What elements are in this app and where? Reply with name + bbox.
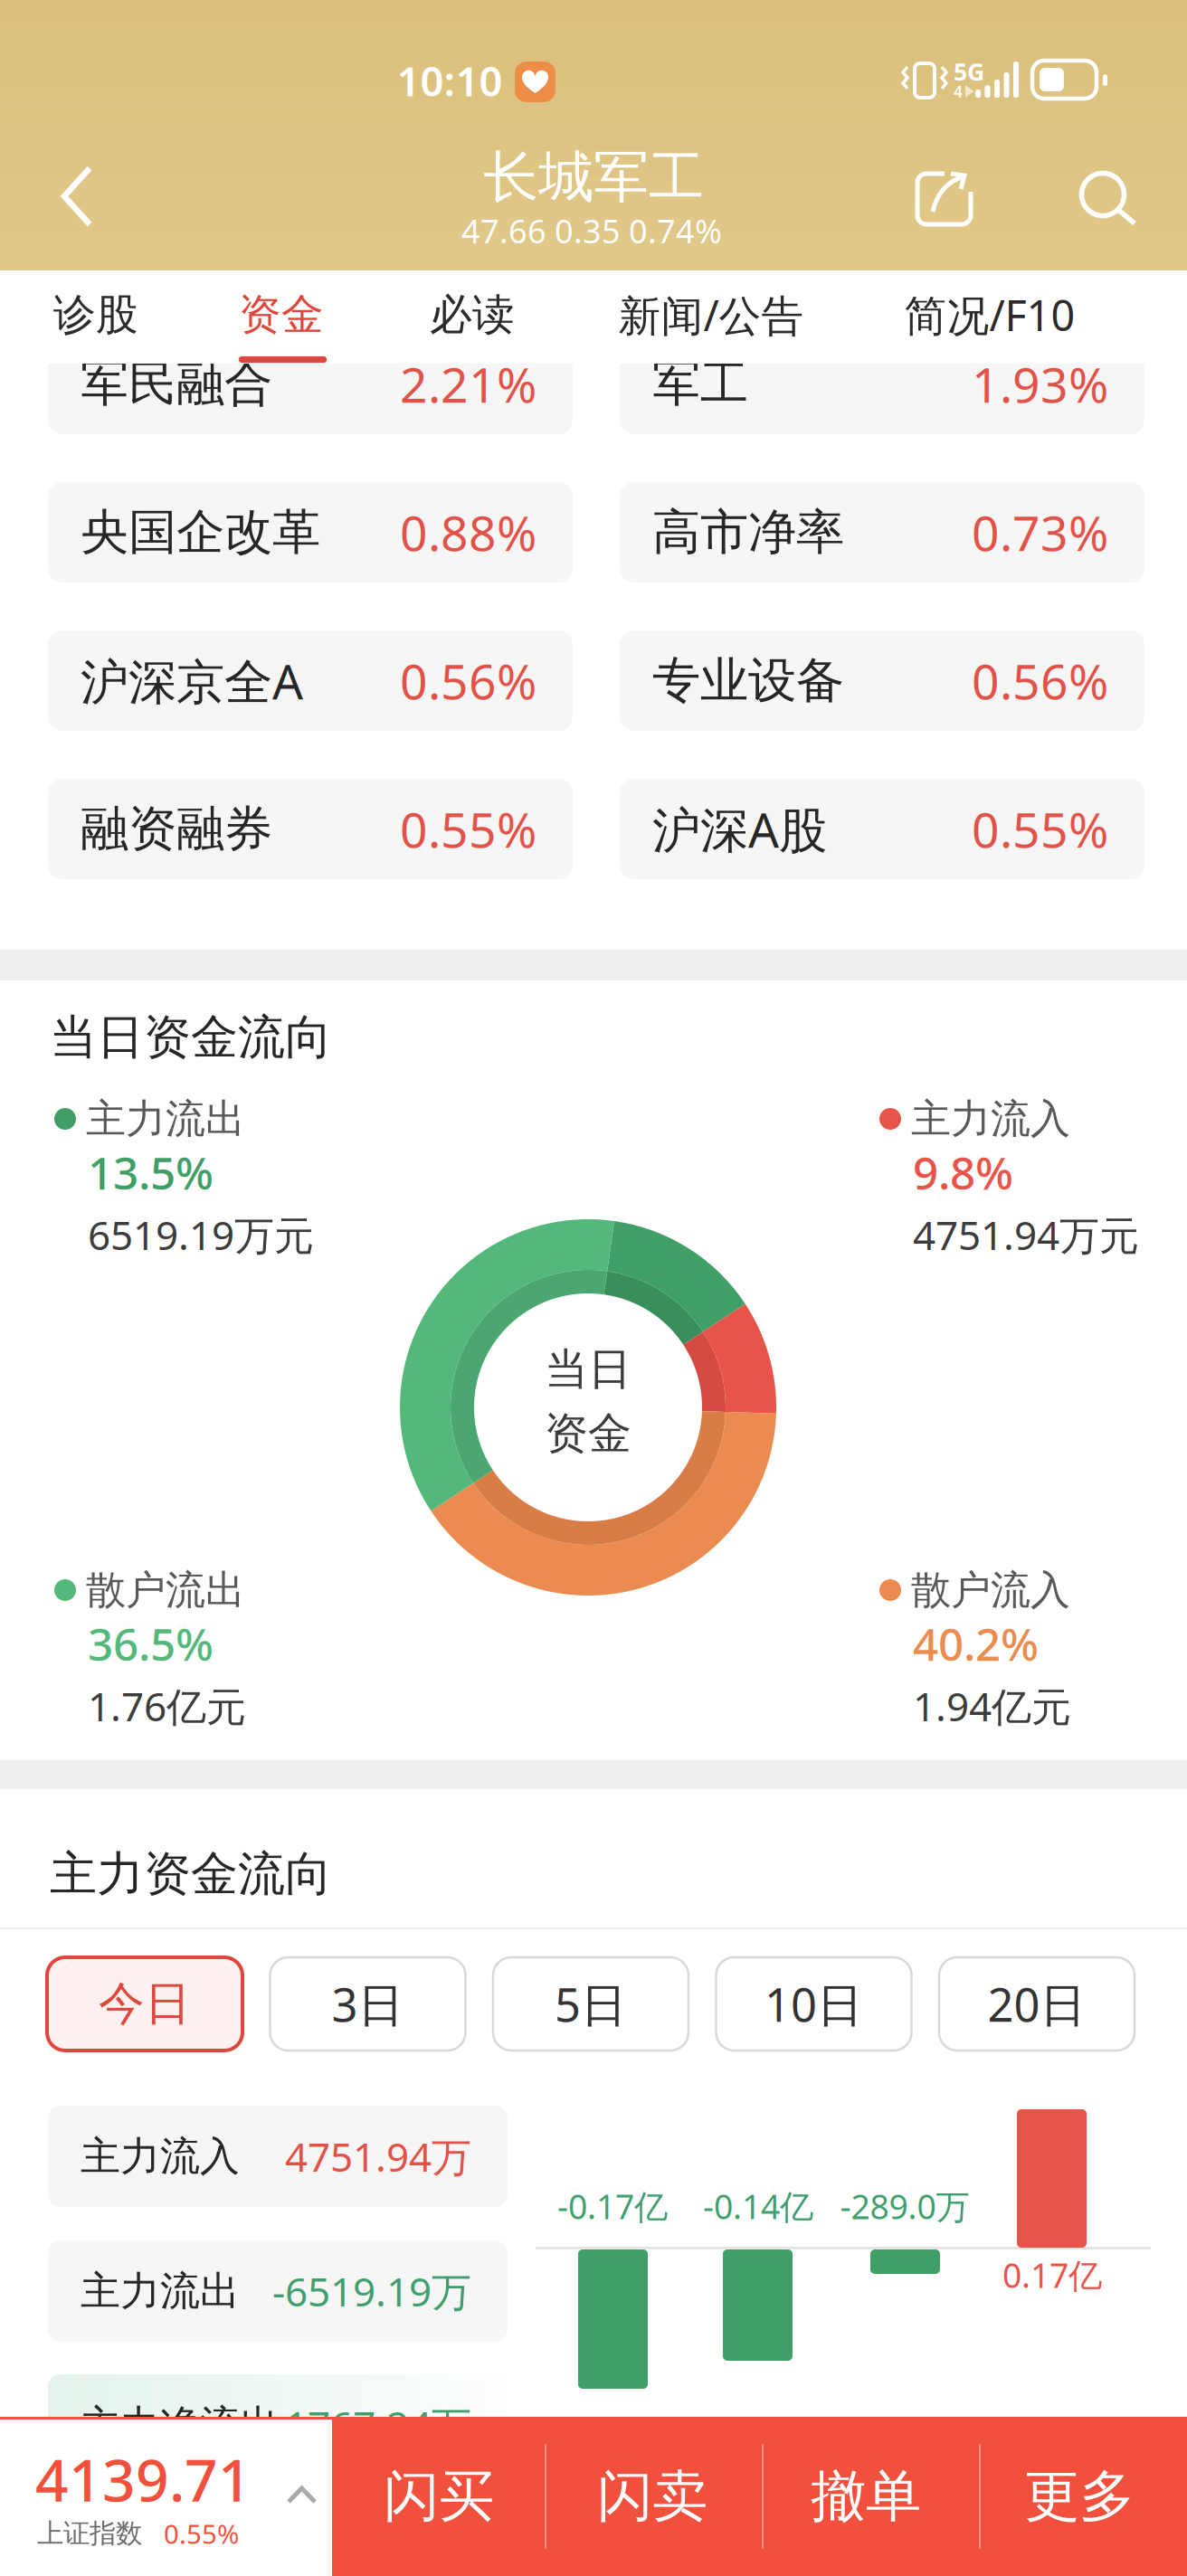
button[interactable]: 诊股	[53, 272, 138, 357]
button[interactable]: 今日	[47, 1957, 242, 2050]
staticText: 0.56%	[400, 649, 537, 713]
staticText: 4751.94万	[285, 2130, 471, 2183]
staticText: 36.5%	[88, 1614, 214, 1673]
staticText: 0.17亿	[1002, 2252, 1102, 2297]
staticText: 9.8%	[913, 1143, 1013, 1202]
button[interactable]: 高市净率	[620, 482, 1144, 582]
staticText: 主力净流出	[81, 2401, 280, 2449]
staticText: 主力流入	[81, 2132, 240, 2181]
staticText: 撤单	[811, 2462, 921, 2530]
staticText: 0.55%	[972, 797, 1108, 861]
staticText: 0.55%	[400, 797, 537, 861]
staticText: 40.2%	[913, 1614, 1039, 1673]
staticText: 新闻/公告	[618, 287, 804, 343]
button[interactable]: 简况/F10	[904, 272, 1075, 357]
button[interactable]: Share	[905, 161, 986, 242]
staticText: 3日	[332, 1974, 404, 2034]
staticText: 10日	[764, 1974, 863, 2034]
button[interactable]: 5日	[493, 1957, 688, 2050]
staticText: -0.14亿	[703, 2184, 813, 2228]
staticText: 长城军工	[483, 143, 704, 211]
button[interactable]: 必读	[430, 272, 515, 357]
staticText: 主力资金流向	[50, 1845, 332, 1903]
staticText: 4	[954, 81, 963, 102]
staticText: 军民融合	[81, 354, 272, 414]
staticText: 诊股	[53, 289, 138, 341]
button[interactable]: Search	[1073, 161, 1154, 242]
button[interactable]: Back	[0, 0, 145, 270]
button[interactable]: 沪深A股	[620, 779, 1144, 879]
staticText: 2.21%	[400, 352, 537, 416]
staticText: 主力流出	[86, 1094, 245, 1143]
staticText: 13.5%	[88, 1143, 214, 1202]
staticText: 4139.71	[35, 2441, 252, 2518]
staticText: 资金	[545, 1407, 631, 1460]
button[interactable]: 军民融合	[48, 334, 573, 434]
staticText: 沪深A股	[652, 797, 827, 861]
staticText: 47.66 0.35 0.74%	[461, 209, 722, 252]
staticText: 6519.19万元	[88, 1208, 314, 1261]
staticText: 上证指数	[37, 2517, 142, 2550]
button[interactable]: 央国企改革	[48, 482, 573, 582]
button[interactable]: 3日	[270, 1957, 465, 2050]
button[interactable]: 撤单	[775, 2417, 956, 2576]
button[interactable]: 闪卖	[562, 2417, 743, 2576]
staticText: 主力流入	[911, 1094, 1070, 1143]
staticText: -0.17亿	[557, 2184, 668, 2228]
button[interactable]: 资金	[239, 272, 324, 357]
staticText: 必读	[430, 289, 515, 341]
staticText: -6519.19万	[272, 2265, 471, 2317]
staticText: 10:10	[397, 53, 503, 108]
button[interactable]: 10日	[716, 1957, 912, 2050]
staticText: 0.56%	[972, 649, 1108, 713]
button[interactable]: 更多	[989, 2417, 1170, 2576]
staticText: 1.94亿元	[913, 1679, 1071, 1732]
staticText: 今日	[99, 1976, 191, 2032]
staticText: 闪买	[384, 2462, 494, 2530]
button[interactable]: 闪买	[348, 2417, 529, 2576]
staticText: 20日	[988, 1974, 1086, 2034]
staticText: 5日	[555, 1974, 627, 2034]
staticText: 0.55%	[164, 2516, 239, 2551]
staticText: 央国企改革	[81, 503, 320, 562]
button[interactable]: 军工	[620, 334, 1144, 434]
button[interactable]: 20日	[939, 1957, 1135, 2050]
staticText: 5G	[954, 55, 984, 87]
staticText: 闪卖	[597, 2462, 707, 2530]
staticText: 专业设备	[652, 651, 844, 710]
staticText: -289.0万	[840, 2184, 969, 2228]
button[interactable]: 沪深京全A	[48, 630, 573, 731]
staticText: 4751.94万元	[913, 1208, 1139, 1261]
staticText: 散户流出	[86, 1566, 245, 1615]
staticText: 1767.24万	[285, 2399, 471, 2451]
staticText: 沪深京全A	[81, 649, 303, 713]
staticText: 高市净率	[652, 503, 844, 562]
staticText: 当日	[545, 1343, 631, 1396]
button[interactable]: 融资融券	[48, 779, 573, 879]
staticText: 0.88%	[400, 500, 537, 564]
staticText: 军工	[652, 354, 748, 414]
button[interactable]: 新闻/公告	[618, 272, 804, 357]
button[interactable]: 专业设备	[620, 630, 1144, 731]
staticText: 1.93%	[972, 352, 1108, 416]
staticText: 主力流出	[81, 2267, 240, 2316]
staticText: 资金	[239, 289, 324, 341]
staticText: 散户流入	[911, 1566, 1070, 1615]
staticText: 0.73%	[972, 500, 1108, 564]
staticText: 融资融券	[81, 799, 272, 859]
staticText: 1.76亿元	[88, 1679, 246, 1732]
staticText: 更多	[1024, 2462, 1135, 2530]
staticText: 当日资金流向	[50, 1009, 332, 1066]
staticText: 简况/F10	[904, 287, 1075, 343]
